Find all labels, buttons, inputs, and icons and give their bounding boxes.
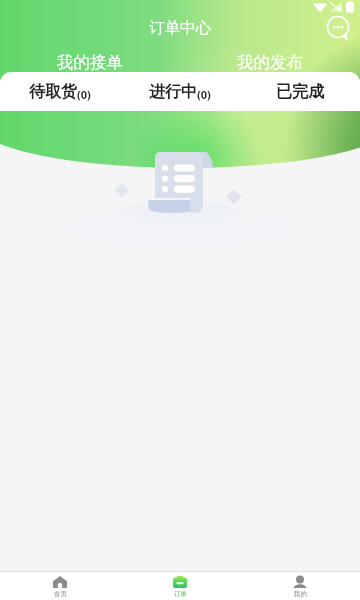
button[interactable]: 首页 xyxy=(0,575,120,598)
staticText: 待取货 xyxy=(29,82,77,102)
button[interactable]: 我的发布 xyxy=(180,42,360,72)
button[interactable]: Messages xyxy=(325,15,351,41)
staticText: 已完成 xyxy=(276,82,324,102)
button[interactable]: 订单 xyxy=(120,575,240,598)
staticText: 我的接单 xyxy=(57,52,123,72)
staticText: 进行中 xyxy=(149,82,197,102)
staticText: 首页 xyxy=(54,590,67,598)
button[interactable]: 我的接单 xyxy=(0,42,180,72)
staticText: (0) xyxy=(197,87,211,102)
button[interactable]: 进行中 xyxy=(120,82,240,102)
staticText: 我的发布 xyxy=(237,52,303,72)
button[interactable]: 已完成 xyxy=(240,82,360,102)
button[interactable]: 待取货 xyxy=(0,82,120,102)
staticText: 订单中心 xyxy=(149,18,211,38)
staticText: 订单 xyxy=(174,590,187,598)
staticText: 我的 xyxy=(294,590,307,598)
button[interactable]: 我的 xyxy=(240,575,360,598)
staticText: (0) xyxy=(77,87,91,102)
